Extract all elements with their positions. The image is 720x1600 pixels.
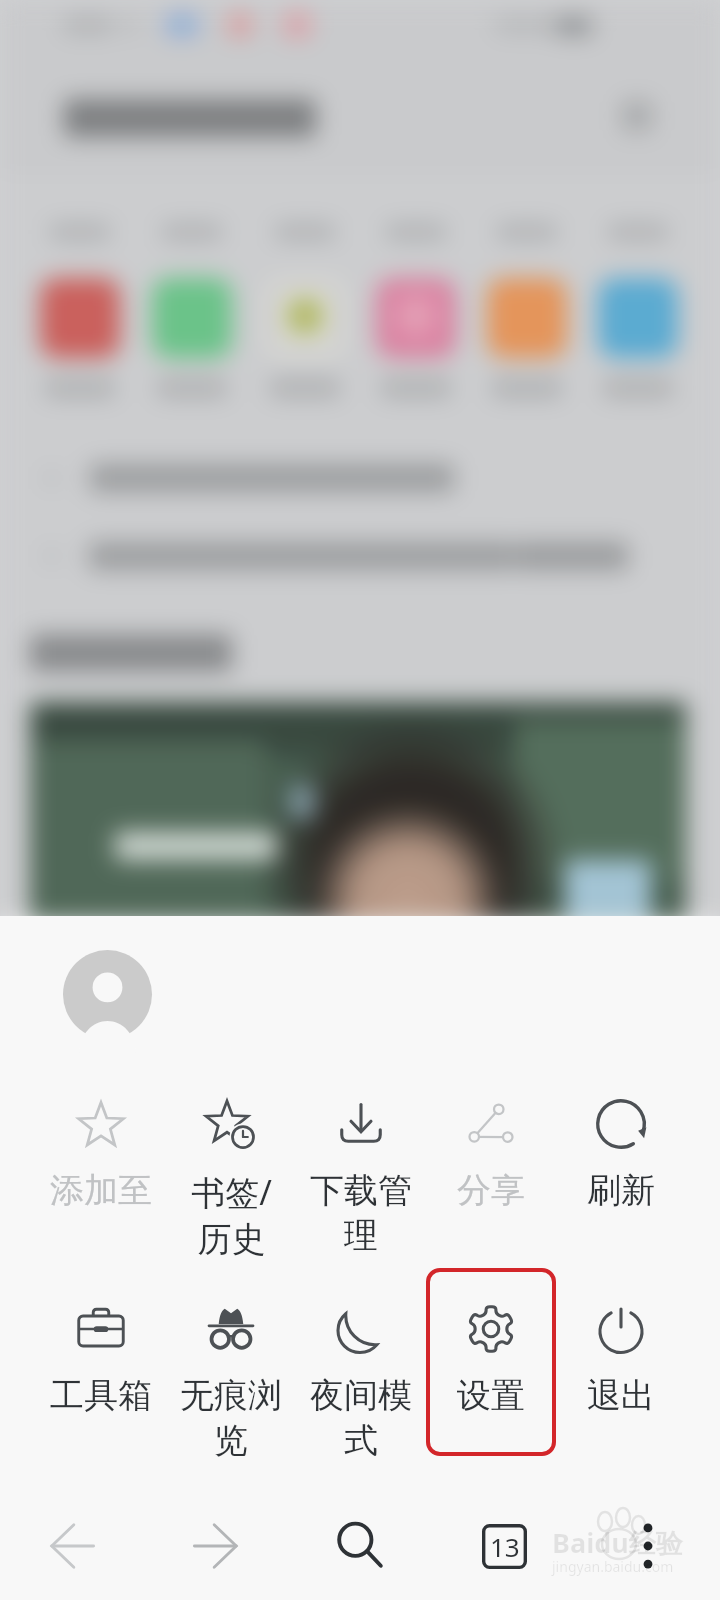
- staticText: Baidu经验: [552, 1524, 683, 1561]
- staticText: 设置: [457, 1374, 525, 1417]
- staticText: 退出: [587, 1374, 655, 1417]
- button[interactable]: 设置: [426, 1268, 556, 1473]
- button[interactable]: 无痕浏 览: [166, 1268, 296, 1473]
- button[interactable]: 书签/ 历史: [166, 1063, 296, 1268]
- staticText: 工具箱: [50, 1374, 152, 1417]
- button[interactable]: More options: [576, 1492, 720, 1600]
- button[interactable]: Tabs: 13 open: [432, 1492, 576, 1600]
- button[interactable]: Forward: [144, 1492, 288, 1600]
- button[interactable]: 夜间模 式: [296, 1268, 426, 1473]
- staticText: 分享: [457, 1169, 525, 1212]
- staticText: jingyan.baidu.com: [552, 1557, 674, 1576]
- button[interactable]: 下载管 理: [296, 1063, 426, 1268]
- staticText: 夜间模 式: [310, 1374, 412, 1462]
- staticText: 添加至: [50, 1169, 152, 1212]
- button[interactable]: Back: [0, 1492, 144, 1600]
- staticText: 刷新: [587, 1169, 655, 1212]
- button[interactable]: Search: [288, 1492, 432, 1600]
- staticText: 无痕浏 览: [180, 1374, 282, 1462]
- button[interactable]: 添加至: [36, 1063, 166, 1268]
- button[interactable]: 刷新: [556, 1063, 686, 1268]
- staticText: 下载管 理: [310, 1169, 412, 1257]
- button[interactable]: 工具箱: [36, 1268, 166, 1473]
- button[interactable]: 分享: [426, 1063, 556, 1268]
- staticText: 13: [490, 1529, 520, 1564]
- button[interactable]: 退出: [556, 1268, 686, 1473]
- staticText: 书签/ 历史: [191, 1169, 272, 1261]
